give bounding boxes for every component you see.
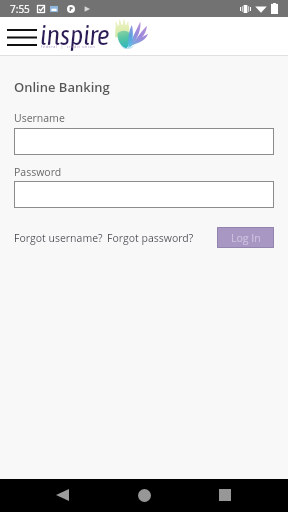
staticText: federal | credit union <box>41 44 96 49</box>
button[interactable]: Open navigation menu <box>2 21 41 53</box>
button[interactable]: Back <box>46 479 78 511</box>
staticText: Password <box>14 165 62 179</box>
staticText: 7:55 <box>10 2 30 16</box>
button[interactable]: Recent apps <box>209 479 241 511</box>
staticText: inspire <box>40 19 110 51</box>
button[interactable]: Password field <box>14 181 274 208</box>
button[interactable]: Home <box>128 479 160 511</box>
button[interactable]: Username field <box>14 128 274 155</box>
button[interactable]: Forgot username? <box>14 231 103 245</box>
staticText: Log In <box>231 231 261 245</box>
button[interactable]: Log In <box>217 227 274 248</box>
button[interactable]: Forgot password? <box>107 231 194 245</box>
staticText: Username <box>14 111 65 125</box>
staticText: Online Banking <box>14 78 110 96</box>
